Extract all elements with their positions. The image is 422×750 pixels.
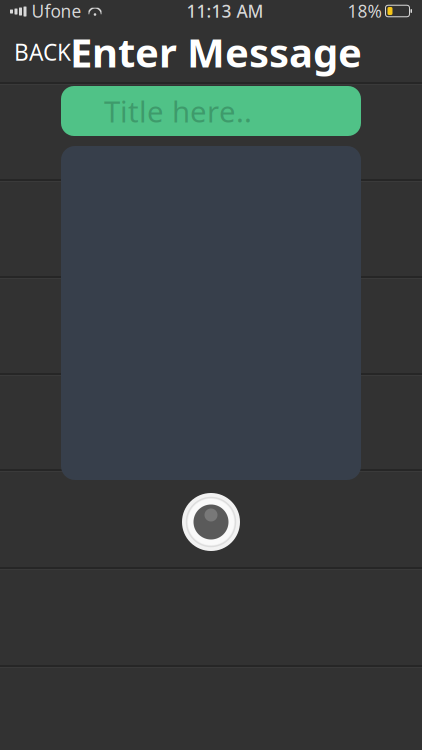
button[interactable]: BACK: [0, 27, 85, 77]
staticText: Title here..: [104, 91, 252, 130]
staticText: Enter Message: [70, 25, 362, 78]
button[interactable]: Title here..: [61, 86, 361, 136]
button[interactable]: Record: [179, 490, 243, 554]
staticText: 18%: [347, 0, 381, 22]
staticText: 11:13 AM: [186, 0, 263, 22]
staticText: Ufone: [31, 0, 81, 22]
staticText: BACK: [14, 37, 71, 67]
